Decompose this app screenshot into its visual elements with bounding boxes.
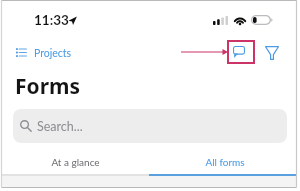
button[interactable]: Search... bbox=[13, 109, 287, 143]
button[interactable]: At a glance bbox=[0, 153, 150, 171]
button[interactable]: Projects bbox=[14, 45, 70, 61]
staticText: 11:33 bbox=[34, 12, 69, 28]
staticText: All forms bbox=[205, 156, 245, 168]
button[interactable]: Filter bbox=[261, 42, 282, 64]
staticText: Forms bbox=[15, 72, 81, 101]
staticText: Search... bbox=[37, 119, 83, 134]
button[interactable]: All forms bbox=[150, 153, 300, 171]
button[interactable]: Comments bbox=[227, 40, 255, 64]
staticText: Projects bbox=[34, 47, 72, 60]
staticText: At a glance bbox=[51, 156, 100, 168]
